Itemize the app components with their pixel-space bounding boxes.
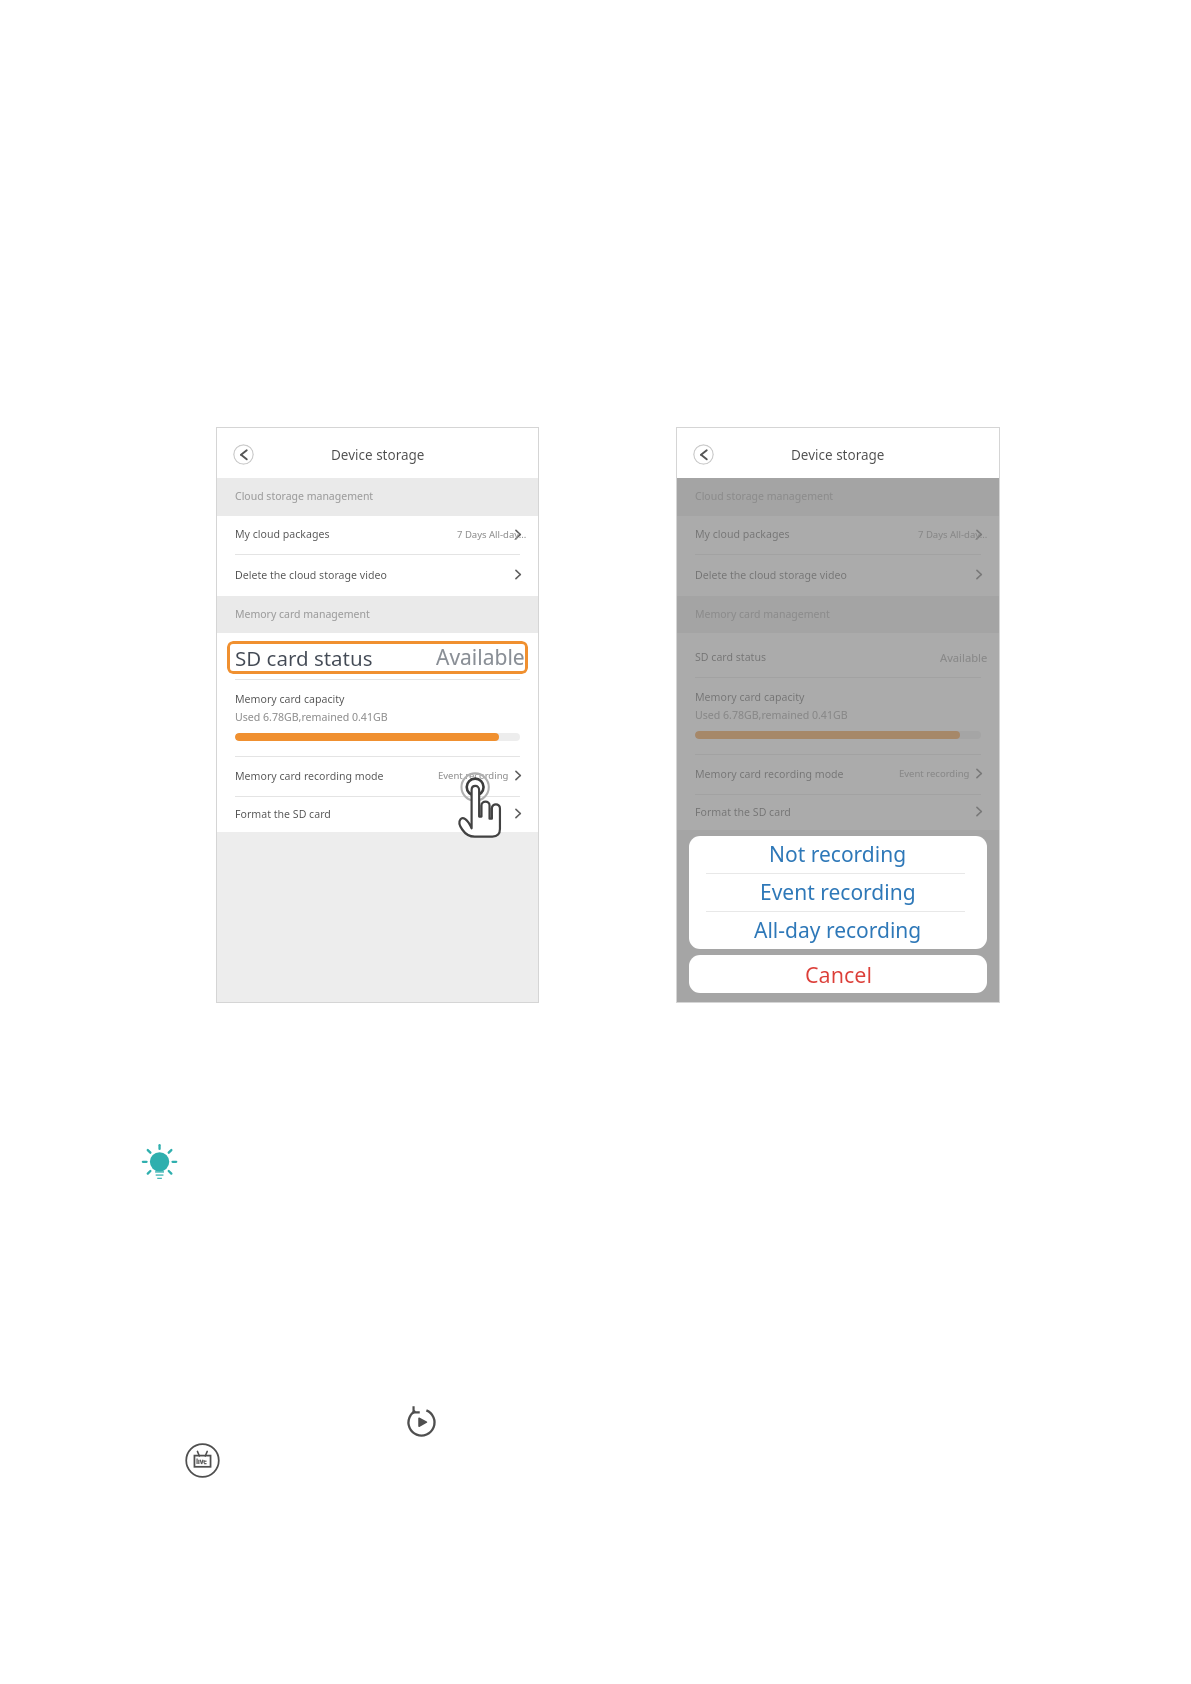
staticText: 7 Days All-day...: [918, 528, 988, 541]
staticText: Used 6.78GB,remained 0.41GB: [695, 708, 848, 722]
staticText: Delete the cloud storage video: [235, 568, 387, 582]
staticText: Memory card management: [695, 607, 830, 621]
staticText: Device storage: [791, 446, 885, 464]
staticText: My cloud packages: [695, 527, 790, 541]
button[interactable]: Event recording: [689, 874, 987, 911]
staticText: Event recording: [899, 767, 970, 780]
button[interactable]: Memory card recording mode: [676, 755, 1000, 795]
staticText: Available: [436, 643, 525, 672]
staticText: Delete the cloud storage video: [695, 568, 847, 582]
staticText: Cloud storage management: [695, 489, 834, 503]
staticText: Memory card capacity: [235, 692, 345, 706]
button[interactable]: Back: [693, 444, 714, 465]
staticText: Memory card recording mode: [235, 769, 384, 783]
button[interactable]: Delete the cloud storage video: [676, 555, 1000, 596]
staticText: Used 6.78GB,remained 0.41GB: [235, 710, 388, 724]
button[interactable]: All-day recording: [689, 912, 987, 949]
button[interactable]: SD card status: [676, 633, 1000, 677]
staticText: Available: [940, 650, 988, 665]
staticText: Memory card management: [235, 607, 370, 621]
staticText: Cancel: [805, 960, 872, 989]
button[interactable]: Memory card recording mode: [216, 757, 539, 797]
button[interactable]: Not recording: [689, 836, 987, 873]
button[interactable]: Delete the cloud storage video: [216, 555, 539, 596]
button[interactable]: Back: [233, 444, 254, 465]
staticText: Cloud storage management: [235, 489, 374, 503]
staticText: All-day recording: [754, 916, 922, 945]
button[interactable]: My cloud packages: [216, 516, 539, 555]
staticText: 7 Days All-day...: [457, 528, 527, 541]
button[interactable]: Cancel: [689, 955, 987, 993]
staticText: Event recording: [760, 878, 916, 907]
staticText: Event recording: [438, 769, 509, 782]
button[interactable]: Format the SD card: [216, 797, 539, 832]
staticText: Not recording: [769, 840, 907, 869]
staticText: Memory card capacity: [695, 690, 805, 704]
staticText: SD card status: [235, 644, 373, 672]
button[interactable]: Format the SD card: [676, 795, 1000, 830]
button[interactable]: SD card status: [227, 641, 528, 674]
staticText: Memory card recording mode: [695, 767, 844, 781]
staticText: SD card status: [695, 650, 767, 664]
button[interactable]: My cloud packages: [676, 516, 1000, 555]
staticText: Device storage: [331, 446, 425, 464]
staticText: My cloud packages: [235, 527, 330, 541]
staticText: Format the SD card: [235, 807, 331, 821]
staticText: Format the SD card: [695, 805, 791, 819]
